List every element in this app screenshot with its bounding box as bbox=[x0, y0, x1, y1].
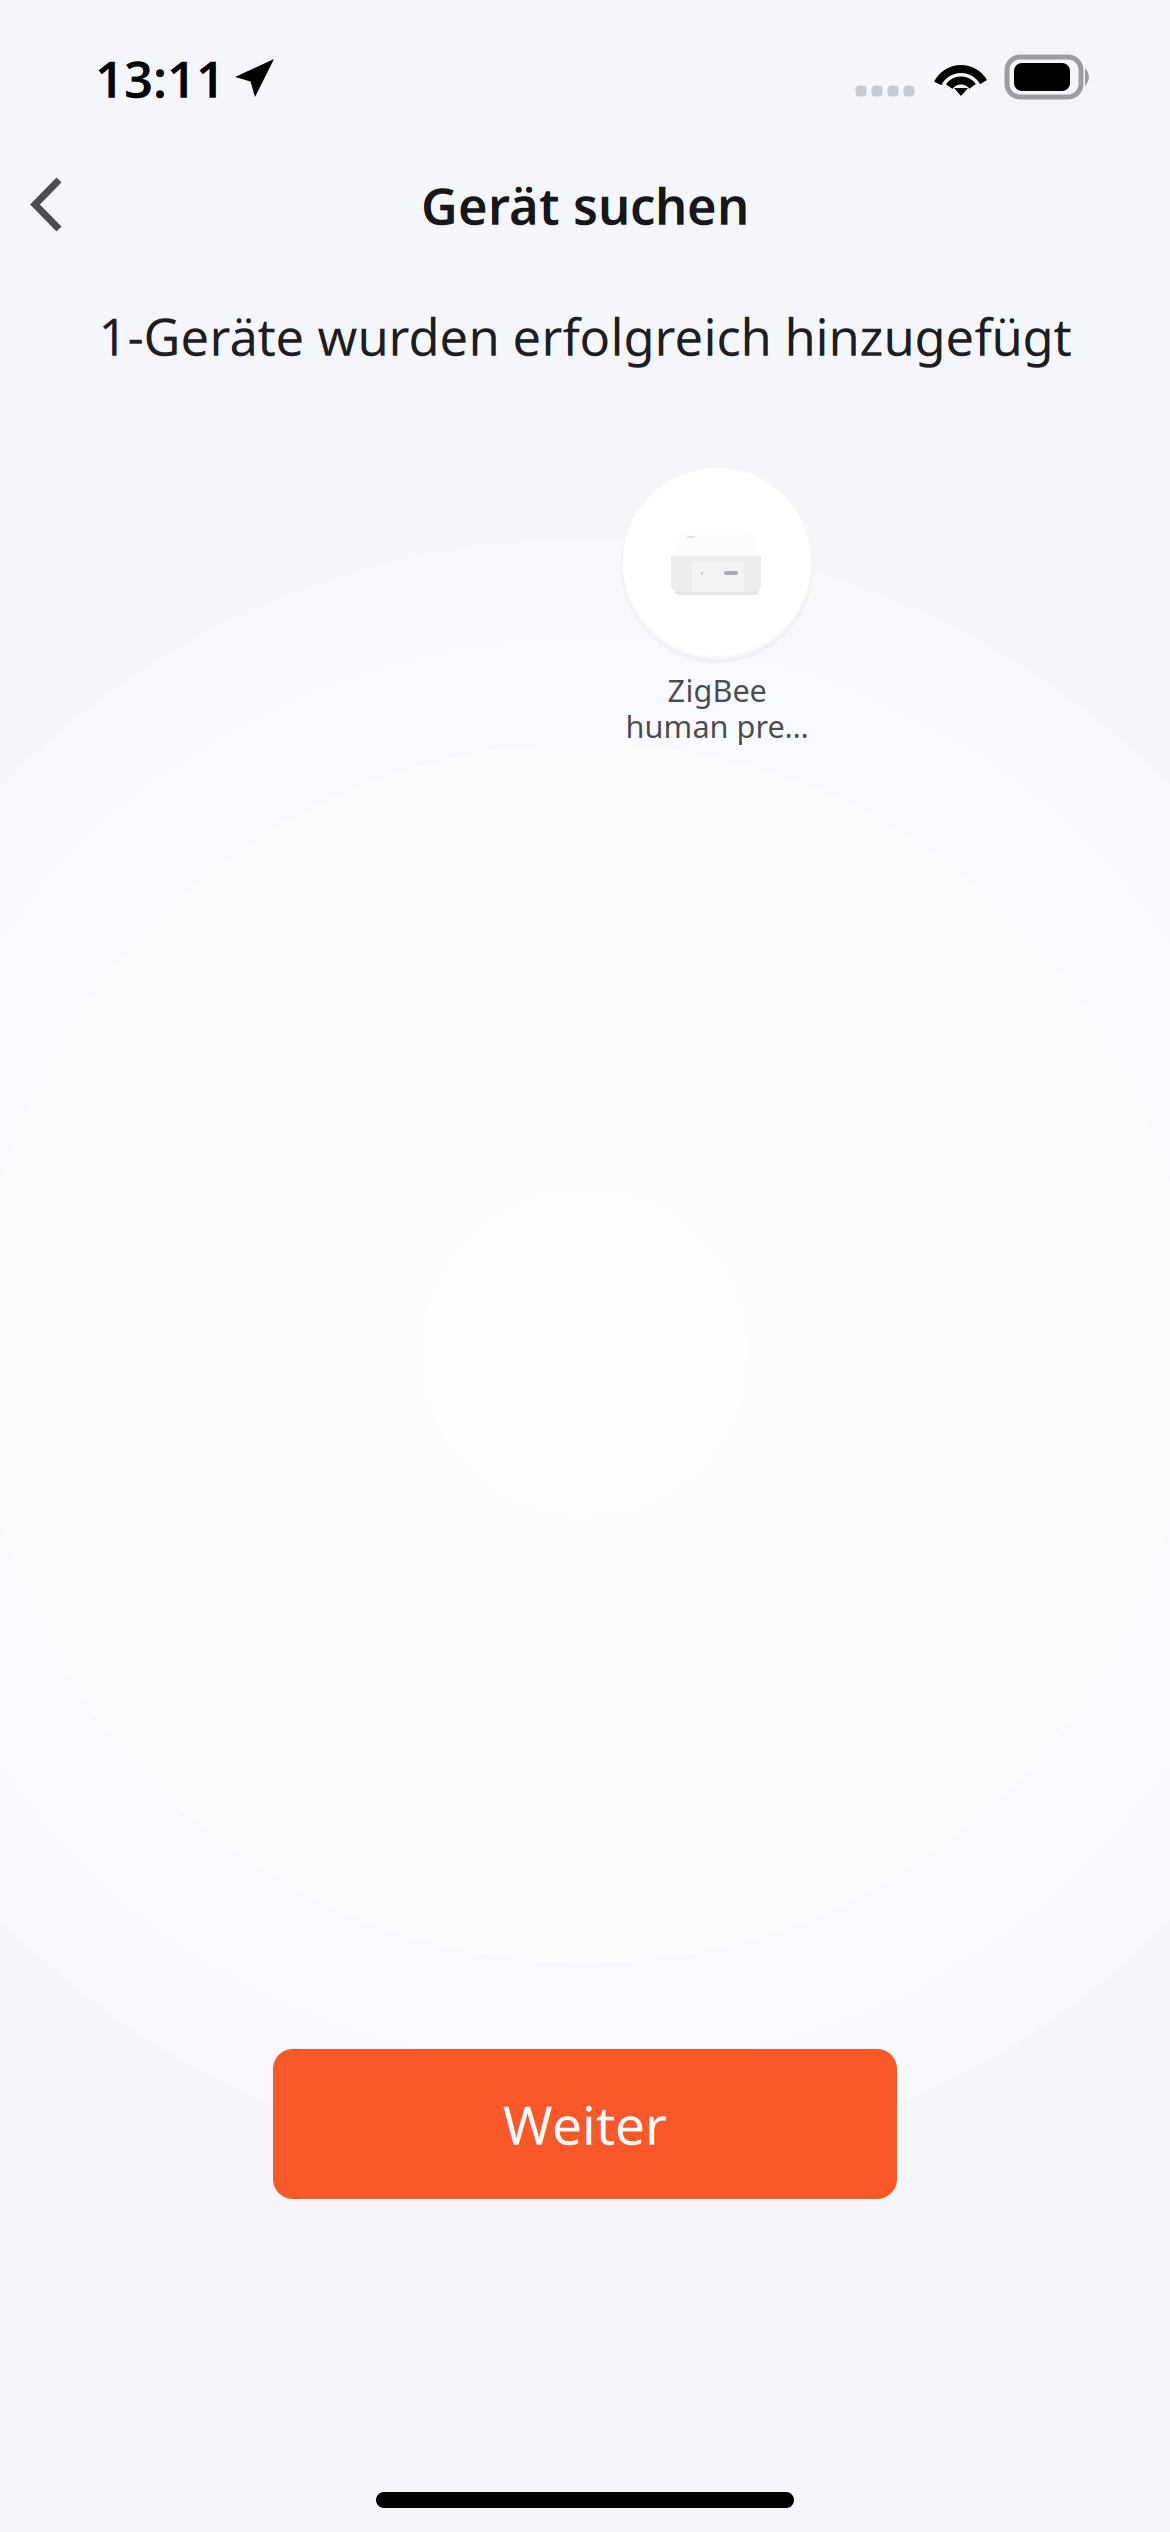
staticText: 1-Geräte wurden erfolgreich hinzugefügt bbox=[98, 302, 1071, 370]
staticText: human pre… bbox=[625, 706, 808, 746]
staticText: Weiter bbox=[503, 2089, 667, 2159]
button[interactable]: Weiter bbox=[273, 2049, 897, 2199]
staticText: 13:11 bbox=[95, 44, 225, 112]
staticText: Gerät suchen bbox=[421, 171, 749, 239]
staticText: ZigBee bbox=[667, 670, 766, 710]
button[interactable]: Back bbox=[0, 144, 101, 268]
